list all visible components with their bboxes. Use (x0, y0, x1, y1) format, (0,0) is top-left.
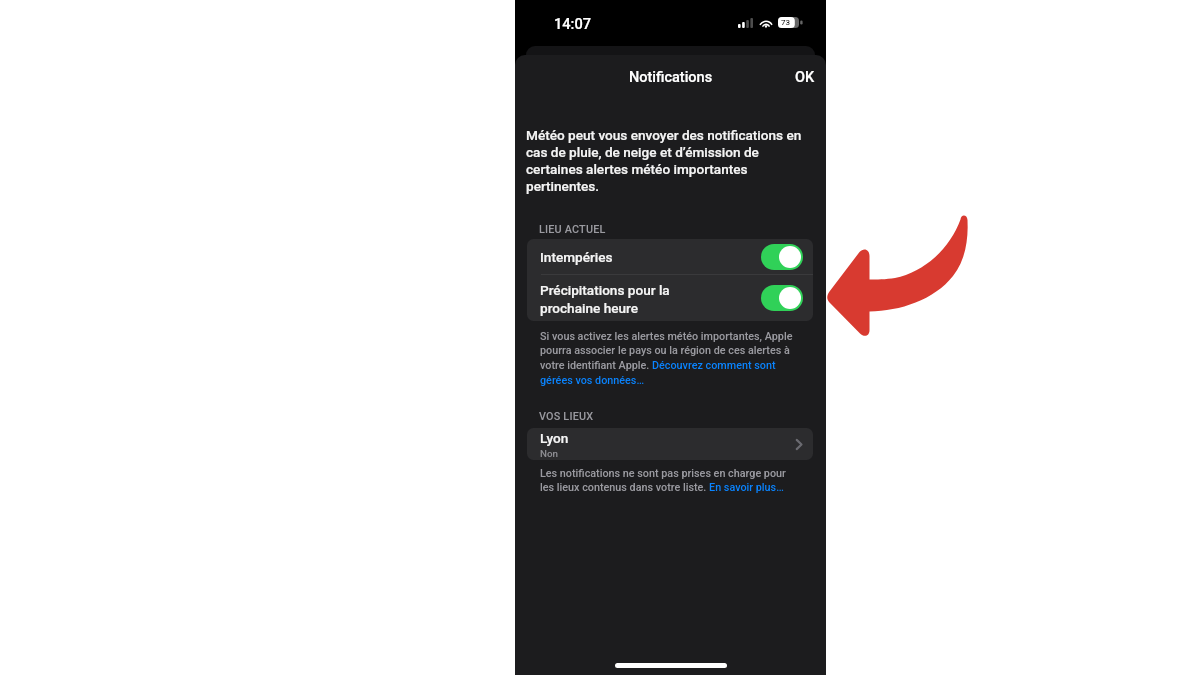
other: Cellular signal (738, 18, 753, 28)
button[interactable]: Précipitations pour la, activé (761, 285, 803, 311)
staticText: 14:07 (554, 15, 592, 32)
staticText: VOS LIEUX (539, 410, 594, 423)
staticText: Météo peut vous envoyer des notification… (526, 127, 803, 194)
staticText: 73 (781, 18, 791, 27)
staticText: OK (795, 69, 815, 86)
staticText: Notifications (515, 69, 826, 86)
other: Wi-Fi (759, 18, 773, 28)
button[interactable]: Lyon (527, 428, 813, 460)
button[interactable]: Intempéries (527, 239, 813, 274)
other: Open Lyon (796, 439, 802, 450)
staticText: Si vous activez les alertes météo import… (540, 330, 797, 387)
staticText: Intempéries (540, 249, 613, 265)
staticText: Précipitations pour la (540, 282, 670, 298)
staticText: LIEU ACTUEL (539, 223, 606, 236)
button[interactable]: Intempéries, activé (761, 244, 803, 270)
other: Flèche rouge (0, 0, 1200, 675)
button[interactable]: OK (786, 61, 824, 94)
other: Battery 73 percent (778, 17, 799, 28)
button[interactable]: Précipitations pour la (527, 275, 813, 321)
staticText: Les notifications ne sont pas prises en … (540, 467, 801, 494)
staticText: Lyon (540, 430, 569, 446)
staticText: prochaine heure (540, 300, 639, 316)
staticText: Non (540, 448, 558, 459)
